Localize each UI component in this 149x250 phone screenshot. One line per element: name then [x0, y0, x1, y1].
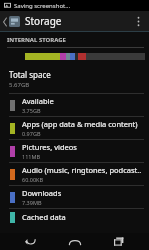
staticText: 7.39MB [22, 199, 42, 206]
staticText: 3.75GB [22, 107, 41, 114]
staticText: 111MB [22, 153, 41, 160]
staticText: 5.67GB [9, 81, 30, 89]
staticText: Pictures, videos [22, 142, 77, 152]
staticText: Storage [25, 14, 62, 28]
button[interactable]: Navigate up [0, 11, 22, 31]
staticText: Available [22, 96, 54, 106]
staticText: 0.97GB [22, 130, 41, 137]
staticText: INTERNAL STORAGE [7, 36, 66, 44]
button[interactable]: Recent apps [104, 233, 134, 250]
button[interactable]: Apps (app data & media content) [0, 117, 149, 139]
button[interactable]: Downloads [0, 186, 149, 208]
staticText: Saving screenshot... [14, 2, 71, 10]
button[interactable]: Cached data [0, 209, 149, 225]
staticText: Downloads [22, 188, 62, 198]
staticText: 60.00KB [22, 176, 44, 183]
staticText: Total space [9, 69, 51, 80]
button[interactable]: More options [130, 11, 146, 31]
staticText: Audio (music, ringtones, podcast.. [22, 165, 142, 175]
button[interactable]: Available [0, 94, 149, 116]
button[interactable]: Back [15, 233, 45, 250]
staticText: Apps (app data & media content) [22, 119, 138, 129]
staticText: Cached data [22, 212, 66, 222]
button[interactable]: Audio (music, ringtones, podcast.. [0, 163, 149, 185]
button[interactable]: Home [60, 233, 90, 250]
button[interactable]: Pictures, videos [0, 140, 149, 162]
